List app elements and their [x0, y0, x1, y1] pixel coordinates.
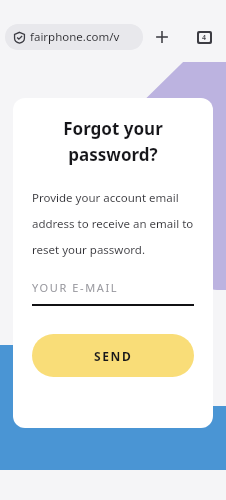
staticText: SEND: [94, 348, 133, 364]
button[interactable]: YOUR E-MAIL: [32, 280, 194, 306]
staticText: YOUR E-MAIL: [32, 280, 119, 295]
staticText: Provide your account email address to re…: [32, 190, 194, 258]
button[interactable]: Tabs, 4 open: [191, 24, 217, 50]
staticText: 4: [202, 33, 207, 42]
button[interactable]: fairphone.com/v: [5, 24, 143, 50]
staticText: Forgot your password?: [63, 117, 163, 166]
button[interactable]: SEND: [32, 334, 194, 377]
staticText: fairphone.com/v: [30, 29, 120, 45]
button[interactable]: New tab: [149, 24, 175, 50]
